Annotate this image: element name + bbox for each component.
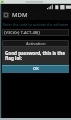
button[interactable]: App icon	[0, 10, 71, 20]
staticText: Enter the code to activate the software	[3, 22, 69, 27]
staticText: MDM	[12, 11, 28, 19]
staticText: {V3Ct0r} T-ACT-48{}	[4, 30, 41, 35]
button[interactable]: {V3Ct0r} T-ACT-48{}	[2, 29, 69, 36]
staticText: Activation	[26, 41, 46, 47]
staticText: Good password, this is the flag lol:	[5, 50, 66, 62]
staticText: OK	[33, 66, 39, 72]
button[interactable]: OK	[2, 65, 69, 73]
button[interactable]: Activation	[2, 40, 69, 48]
other: App icon	[3, 12, 9, 18]
